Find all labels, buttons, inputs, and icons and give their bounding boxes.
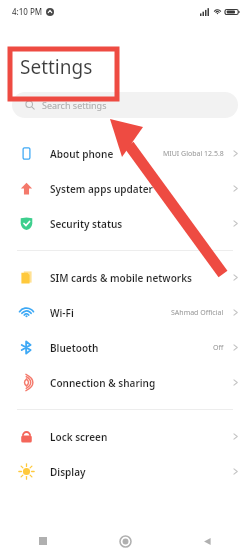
button[interactable]: Connection & sharing (0, 365, 250, 400)
button[interactable]: Display (0, 454, 250, 489)
button[interactable]: Recents (30, 528, 56, 554)
staticText: Lock screen (50, 430, 108, 444)
button[interactable]: Back (194, 528, 220, 554)
staticText: Bluetooth (50, 341, 99, 355)
staticText: 4:10 PM (12, 6, 43, 17)
staticText: Connection & sharing (50, 376, 156, 390)
button[interactable]: Home (112, 528, 138, 554)
staticText: SIM cards & mobile networks (50, 271, 192, 285)
button[interactable]: Bluetooth (0, 330, 250, 365)
button[interactable]: System apps updater (0, 171, 250, 206)
staticText: Settings (20, 54, 93, 80)
button[interactable]: SIM cards & mobile networks (0, 260, 250, 295)
staticText: About phone (50, 147, 114, 161)
staticText: MIUI Global 12.5.8 (163, 149, 224, 159)
staticText: Search settings (42, 99, 107, 111)
button[interactable]: Security status (0, 206, 250, 241)
button[interactable]: Search settings (12, 92, 238, 118)
button[interactable]: Wi-Fi (0, 295, 250, 330)
staticText: Display (50, 465, 86, 479)
staticText: Wi-Fi (50, 306, 74, 320)
staticText: Off (213, 343, 224, 353)
staticText: Security status (50, 217, 123, 231)
button[interactable]: Lock screen (0, 419, 250, 454)
staticText: System apps updater (50, 182, 153, 196)
button[interactable]: About phone (0, 136, 250, 171)
staticText: SAhmad Official (171, 308, 224, 318)
